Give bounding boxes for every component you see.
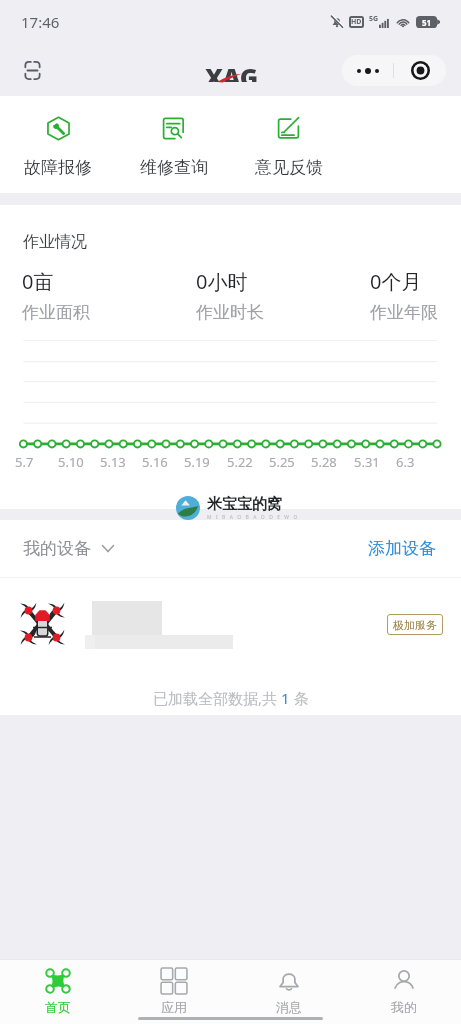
staticText: 5.10 bbox=[58, 453, 84, 471]
staticText: 我的设备 bbox=[23, 538, 91, 559]
staticText: 5.31 bbox=[354, 453, 380, 471]
staticText: 极加服务 bbox=[393, 618, 437, 632]
staticText: 意见反馈 bbox=[255, 157, 323, 178]
staticText: 5G bbox=[369, 14, 379, 24]
button[interactable]: 消息 bbox=[231, 960, 346, 1024]
staticText: 消息 bbox=[276, 999, 302, 1015]
staticText: 作业情况 bbox=[23, 232, 87, 252]
staticText: 5.7 bbox=[15, 453, 34, 471]
staticText: 17:46 bbox=[21, 12, 60, 32]
staticText: 维修查询 bbox=[140, 157, 208, 178]
button[interactable]: Scan QR code bbox=[20, 58, 44, 82]
staticText: XAG bbox=[205, 60, 258, 82]
staticText: 5.22 bbox=[227, 453, 253, 471]
staticText: 条 bbox=[290, 688, 309, 708]
button[interactable]: 添加设备 bbox=[366, 532, 438, 565]
button[interactable]: 极加服务 bbox=[387, 614, 443, 635]
button[interactable]: 故障报修 bbox=[0, 96, 116, 193]
button[interactable]: 我的设备 bbox=[21, 532, 116, 565]
staticText: 5.19 bbox=[184, 453, 210, 471]
button[interactable]: 首页 bbox=[0, 960, 116, 1024]
staticText: 应用 bbox=[161, 999, 187, 1015]
staticText: 51 bbox=[422, 17, 432, 28]
button[interactable]: 应用 bbox=[116, 960, 231, 1024]
staticText: 0亩 bbox=[22, 268, 54, 295]
button[interactable]: Close mini program bbox=[394, 55, 446, 86]
staticText: 5.13 bbox=[100, 453, 126, 471]
staticText: 5.25 bbox=[269, 453, 295, 471]
staticText: 作业时长 bbox=[196, 302, 264, 323]
staticText: 故障报修 bbox=[24, 157, 92, 178]
staticText: 米宝宝的窝 bbox=[207, 495, 282, 514]
staticText: M I B A O B A O D E W O bbox=[207, 514, 299, 521]
staticText: 我的 bbox=[391, 999, 417, 1015]
staticText: 作业面积 bbox=[22, 302, 90, 323]
button[interactable]: 意见反馈 bbox=[231, 96, 346, 193]
staticText: 已加载全部数据,共 bbox=[153, 688, 281, 708]
button[interactable]: More options bbox=[342, 55, 393, 86]
staticText: 添加设备 bbox=[368, 538, 436, 559]
staticText: 0小时 bbox=[196, 268, 248, 295]
staticText: 6.3 bbox=[396, 453, 415, 471]
button[interactable]: 极加服务 bbox=[19, 578, 443, 670]
staticText: 0个月 bbox=[370, 268, 422, 295]
staticText: 5.28 bbox=[311, 453, 337, 471]
staticText: 1 bbox=[281, 688, 290, 708]
staticText: 首页 bbox=[45, 999, 71, 1015]
staticText: 5.16 bbox=[142, 453, 168, 471]
button[interactable]: 维修查询 bbox=[116, 96, 231, 193]
staticText: 作业年限 bbox=[370, 302, 438, 323]
button[interactable]: 我的 bbox=[346, 960, 461, 1024]
staticText: HD bbox=[351, 17, 362, 27]
